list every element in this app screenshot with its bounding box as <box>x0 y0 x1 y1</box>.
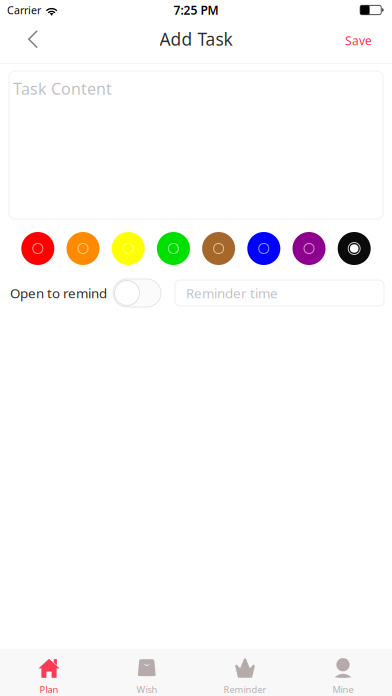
staticText: Reminder <box>223 683 266 696</box>
button[interactable]: Save <box>327 19 392 63</box>
button[interactable]: Open to remind <box>113 279 161 307</box>
button[interactable]: Back <box>0 21 54 62</box>
staticText: Add Task <box>159 27 232 50</box>
button[interactable]: Reminder time <box>175 280 384 306</box>
button[interactable]: Colour <box>202 232 235 265</box>
button[interactable]: Mine <box>294 646 392 696</box>
staticText: Wish <box>136 683 157 696</box>
button[interactable]: Reminder <box>196 646 294 696</box>
button[interactable]: Colour <box>157 232 190 265</box>
button[interactable]: Colour <box>247 232 280 265</box>
staticText: Mine <box>332 683 353 696</box>
button[interactable]: Colour <box>292 232 325 265</box>
button[interactable]: Colour <box>338 232 371 265</box>
button[interactable]: Colour <box>66 232 99 265</box>
staticText: Carrier <box>7 3 41 17</box>
button[interactable]: Task Content <box>9 71 383 219</box>
staticText: Reminder time <box>186 284 278 302</box>
staticText: Plan <box>39 683 58 696</box>
button[interactable]: Plan <box>0 646 98 696</box>
button[interactable]: Colour <box>112 232 145 265</box>
button[interactable]: Wish <box>98 646 196 696</box>
staticText: Open to remind <box>10 284 107 302</box>
button[interactable]: Colour <box>21 232 54 265</box>
staticText: 7:25 PM <box>173 2 218 18</box>
staticText: Task Content <box>13 78 112 99</box>
staticText: Save <box>345 32 372 48</box>
